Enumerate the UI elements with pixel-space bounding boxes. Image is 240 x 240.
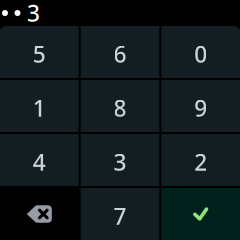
button[interactable]: 2	[161, 134, 240, 186]
button[interactable]: 5	[0, 26, 79, 78]
staticText: 9	[194, 93, 207, 123]
button[interactable]: Confirm passcode	[161, 188, 240, 240]
button[interactable]: 3	[81, 134, 159, 186]
staticText: 5	[33, 39, 46, 69]
staticText: 7	[113, 201, 126, 231]
staticText: 6	[113, 39, 126, 69]
button[interactable]: 8	[81, 80, 159, 132]
staticText: 8	[113, 93, 126, 123]
staticText: 1	[33, 93, 46, 123]
button[interactable]: 4	[0, 134, 79, 186]
staticText: 4	[33, 147, 46, 177]
staticText: 3	[113, 147, 126, 177]
staticText: 2	[194, 147, 207, 177]
button[interactable]: 0	[161, 26, 240, 78]
staticText: 3	[27, 0, 40, 28]
button[interactable]: 1	[0, 80, 79, 132]
button[interactable]: Delete	[0, 188, 79, 240]
button[interactable]: 6	[81, 26, 159, 78]
button[interactable]: 7	[81, 188, 159, 240]
button[interactable]: 9	[161, 80, 240, 132]
staticText: 0	[194, 39, 207, 69]
